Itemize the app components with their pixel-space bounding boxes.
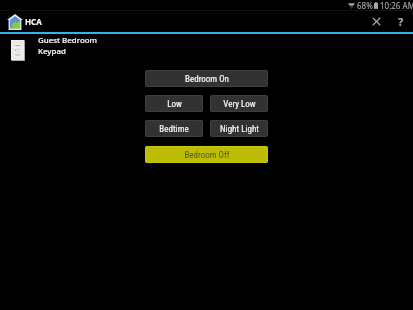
staticText: Bedroom On [185, 74, 229, 85]
button[interactable]: HCA [7, 11, 42, 32]
staticText: Very Low [223, 99, 256, 110]
staticText: Bedroom Off [184, 150, 230, 161]
staticText: Keypad [38, 46, 66, 57]
staticText: Guest Bedroom [38, 35, 97, 46]
button[interactable]: Very Low [210, 95, 268, 112]
staticText: 10:26 AM [380, 0, 413, 11]
button[interactable]: Low [145, 95, 203, 112]
button[interactable]: Bedroom On [145, 70, 268, 87]
staticText: 68% [357, 0, 373, 11]
staticText: Bedtime [159, 124, 189, 135]
staticText: ? [398, 14, 404, 29]
button[interactable]: Help [389, 11, 413, 32]
staticText: Night Light [220, 124, 259, 135]
button[interactable]: Night Light [210, 120, 268, 137]
button[interactable]: Close [363, 11, 389, 32]
button[interactable]: Guest Bedroom [11, 40, 413, 62]
button[interactable]: Bedroom Off [145, 146, 268, 163]
staticText: Low [167, 99, 182, 110]
staticText: HCA [25, 16, 42, 27]
button[interactable]: Bedtime [145, 120, 203, 137]
